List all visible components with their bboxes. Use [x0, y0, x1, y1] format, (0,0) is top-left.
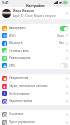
- staticText: Bluetooth: [9, 41, 59, 45]
- button[interactable]: VPN: [0, 62, 70, 69]
- staticText: 9:41: [2, 0, 9, 5]
- staticText: Сотовая связь: [9, 49, 66, 53]
- button[interactable]: Иван Иванов: [0, 7, 70, 19]
- button[interactable]: Режим модема: [0, 54, 70, 62]
- staticText: Настройки: [26, 3, 45, 7]
- staticText: Уведомления: [9, 76, 66, 80]
- staticText: Иван Иванов: [13, 9, 35, 13]
- button[interactable]: Пункт управления: [0, 118, 70, 125]
- staticText: VPN: [9, 64, 60, 68]
- staticText: Wi-Fi: [9, 34, 57, 38]
- button[interactable]: Основные: [0, 110, 70, 118]
- button[interactable]: Сотовая связь: [0, 47, 70, 54]
- staticText: Авиарежим: [9, 26, 60, 30]
- staticText: Режим модема: [9, 56, 66, 60]
- button[interactable]: Уведомления: [0, 74, 70, 82]
- staticText: Apple ID, iCloud, Медиа и покупки: [13, 14, 56, 18]
- button[interactable]: Bluetooth: [0, 39, 70, 47]
- staticText: Пункт управления: [9, 120, 66, 124]
- button[interactable]: Экранное время: [0, 97, 70, 105]
- button[interactable]: Звуки, тактильные сигналы: [0, 82, 70, 90]
- staticText: Не беспокоить: [9, 92, 66, 96]
- staticText: Звуки, тактильные сигналы: [9, 84, 66, 88]
- button[interactable]: Авиарежим: [0, 24, 70, 32]
- staticText: Экранное время: [9, 99, 66, 103]
- button[interactable]: Toggle off: [60, 63, 68, 68]
- staticText: Основные: [9, 112, 66, 116]
- button[interactable]: Wi-Fi: [0, 32, 70, 39]
- button[interactable]: Не беспокоить: [0, 90, 70, 97]
- button[interactable]: Toggle on: [60, 26, 68, 31]
- staticText: Выкл.: [57, 34, 65, 38]
- staticText: Вкл.: [59, 41, 65, 45]
